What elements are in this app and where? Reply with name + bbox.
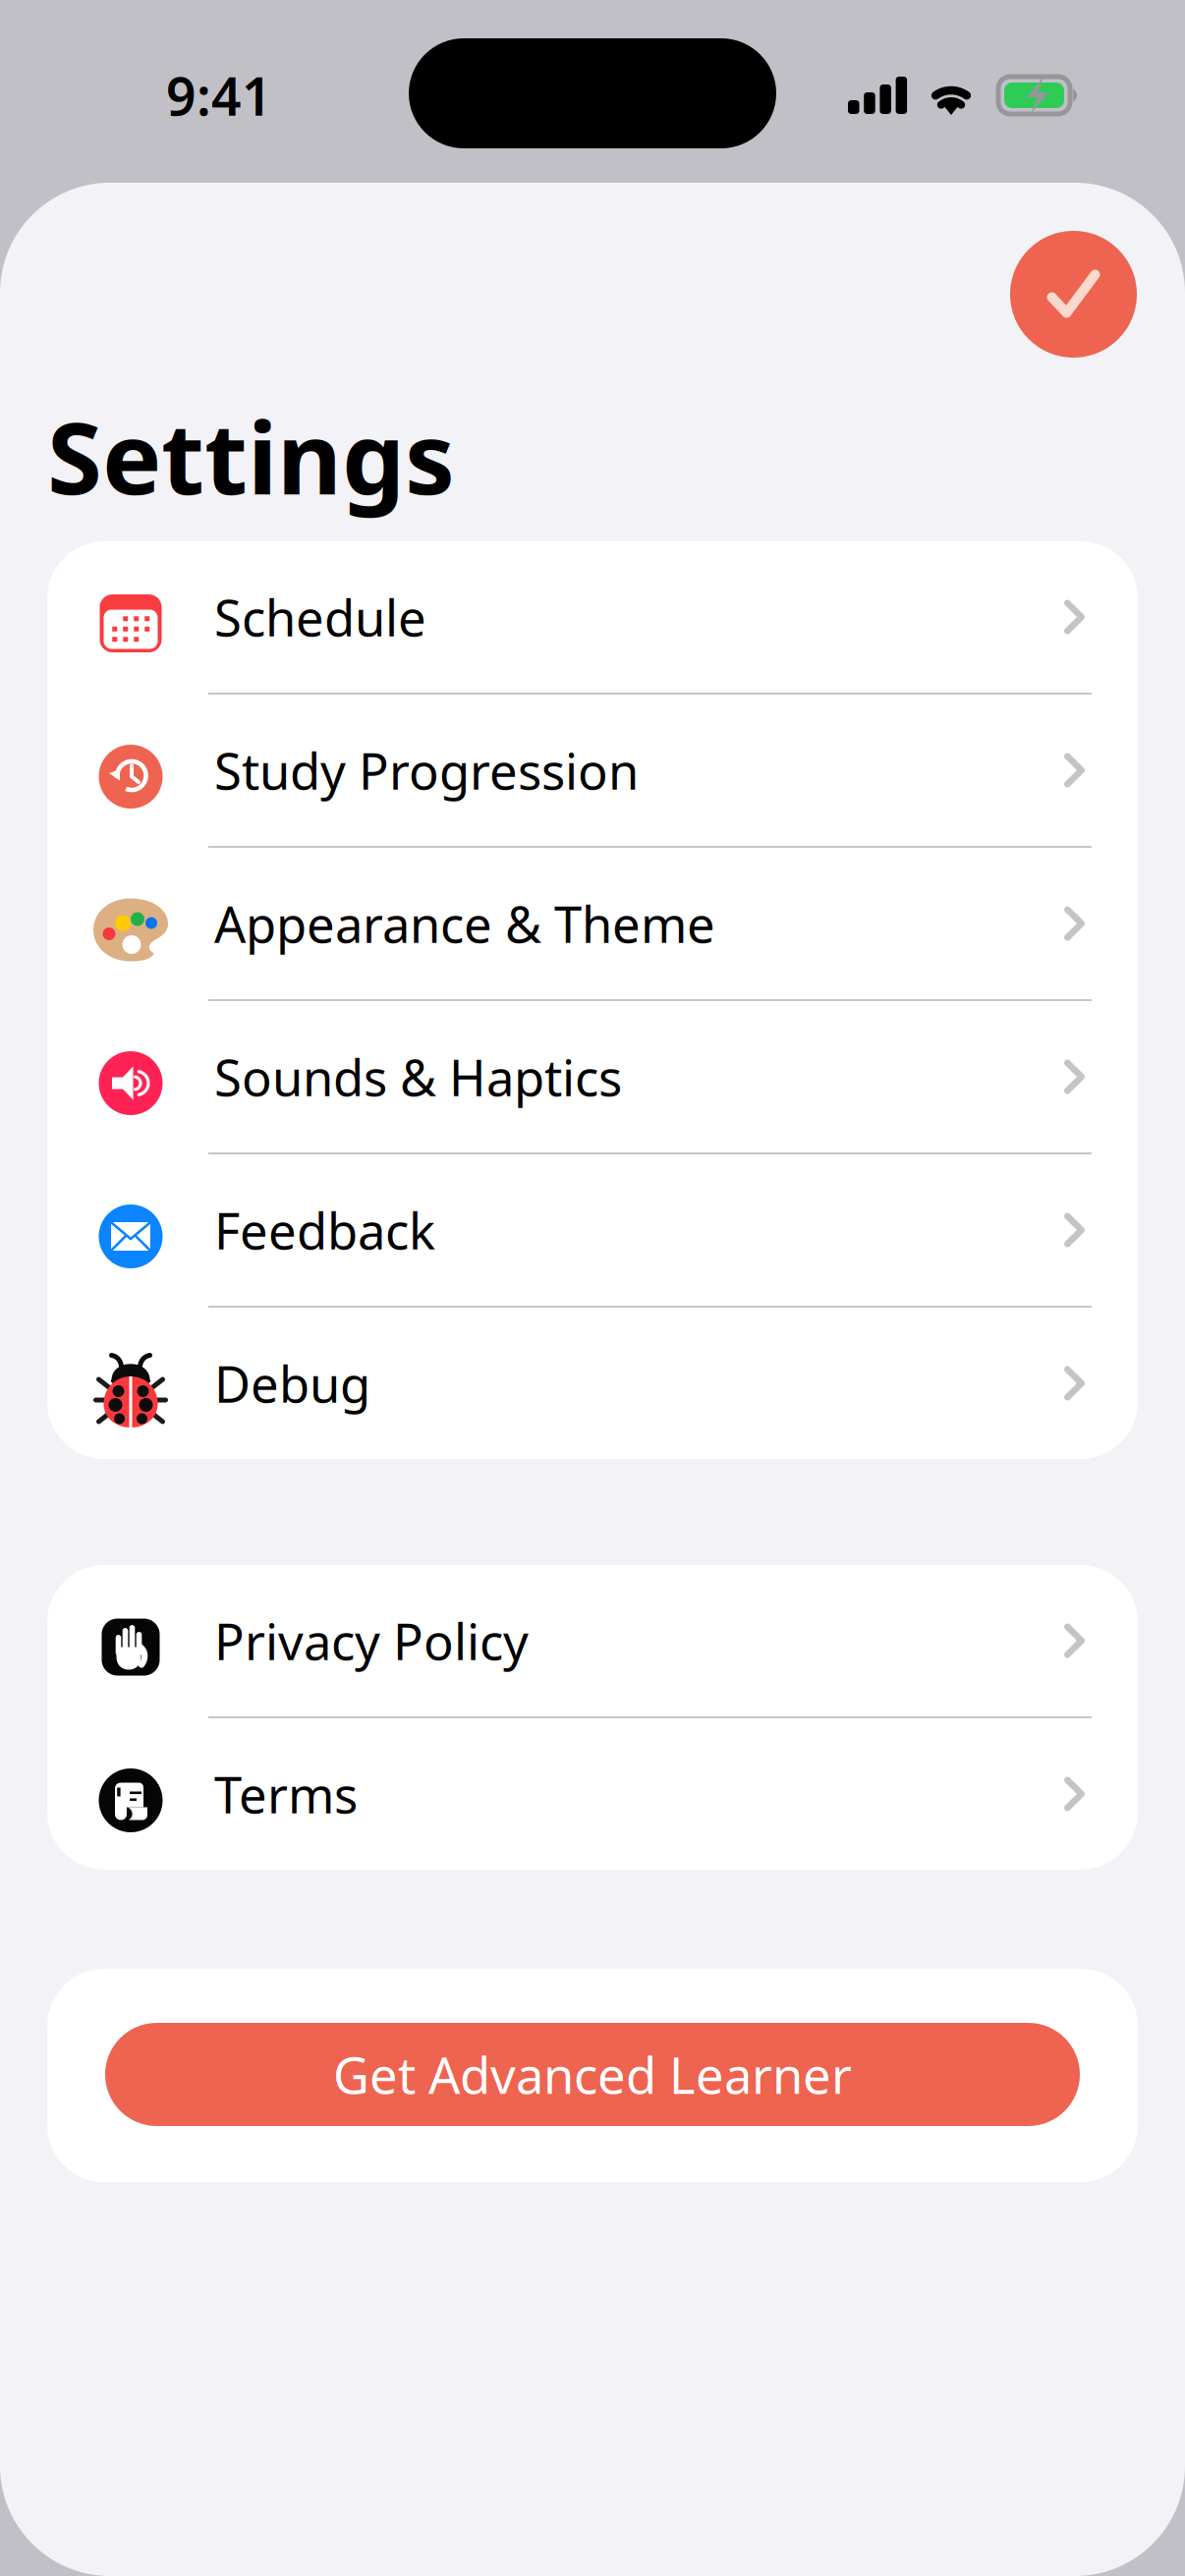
button[interactable]: Privacy Policy xyxy=(47,1565,1138,1718)
staticText: Feedback xyxy=(214,1197,435,1263)
staticText: Terms xyxy=(214,1761,358,1827)
staticText: Sounds & Haptics xyxy=(214,1044,622,1110)
button[interactable]: Appearance & Theme xyxy=(47,848,1138,1001)
button[interactable]: Study Progression xyxy=(47,695,1138,848)
button[interactable]: Get Advanced Learner xyxy=(105,2023,1080,2126)
button[interactable]: Debug xyxy=(47,1308,1138,1459)
staticText: Appearance & Theme xyxy=(214,890,715,957)
button[interactable]: Terms xyxy=(47,1718,1138,1870)
staticText: 9:41 xyxy=(166,61,272,130)
staticText: Debug xyxy=(214,1350,370,1416)
staticText: Get Advanced Learner xyxy=(333,2041,852,2108)
staticText: Schedule xyxy=(214,584,426,650)
button[interactable]: Sounds & Haptics xyxy=(47,1001,1138,1154)
button[interactable]: Done xyxy=(1010,231,1137,358)
staticText: Settings xyxy=(47,390,455,522)
staticText: Study Progression xyxy=(214,737,639,803)
staticText: Privacy Policy xyxy=(214,1608,529,1674)
button[interactable]: Feedback xyxy=(47,1154,1138,1308)
button[interactable]: Schedule xyxy=(47,541,1138,695)
